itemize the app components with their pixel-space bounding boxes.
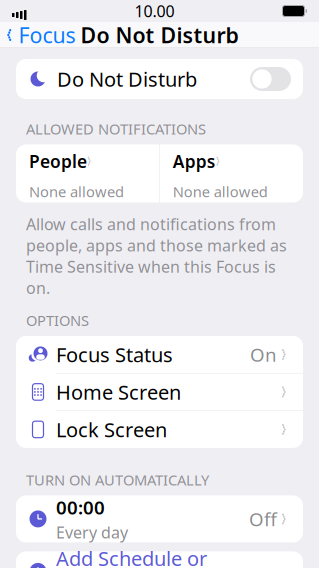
staticText: Focus (19, 21, 76, 49)
staticText: Focus Status (56, 341, 173, 368)
staticText: None allowed (173, 182, 268, 201)
staticText: None allowed (29, 182, 124, 201)
button[interactable]: Do Not Disturb (16, 59, 303, 99)
staticText: Allow calls and notifications from peopl… (26, 213, 287, 298)
button[interactable]: Home Screen (16, 373, 303, 410)
staticText: Apps (173, 150, 216, 173)
staticText: On (250, 342, 277, 367)
staticText: Home Screen (56, 379, 181, 405)
staticText: Do Not Disturb (57, 66, 197, 92)
button[interactable]: People (16, 144, 159, 202)
button[interactable]: 00:00 (16, 495, 303, 542)
button[interactable]: Add Schedule or Automation (16, 551, 303, 568)
button[interactable]: Apps (160, 144, 303, 202)
button[interactable]: Focus (0, 16, 76, 54)
staticText: Every day (56, 522, 128, 543)
staticText: ALLOWED NOTIFICATIONS (26, 119, 206, 138)
staticText: Add Schedule or Automation (56, 545, 207, 568)
staticText: Off (249, 506, 277, 531)
staticText: OPTIONS (26, 310, 89, 330)
button[interactable]: Focus Status (16, 336, 303, 373)
staticText: TURN ON AUTOMATICALLY (26, 470, 209, 489)
staticText: People (29, 150, 87, 173)
staticText: 10.00 (134, 0, 174, 22)
staticText: Lock Screen (56, 416, 167, 443)
button[interactable]: Lock Screen (16, 411, 303, 448)
staticText: 00:00 (56, 495, 105, 520)
staticText: Do Not Disturb (80, 21, 238, 49)
